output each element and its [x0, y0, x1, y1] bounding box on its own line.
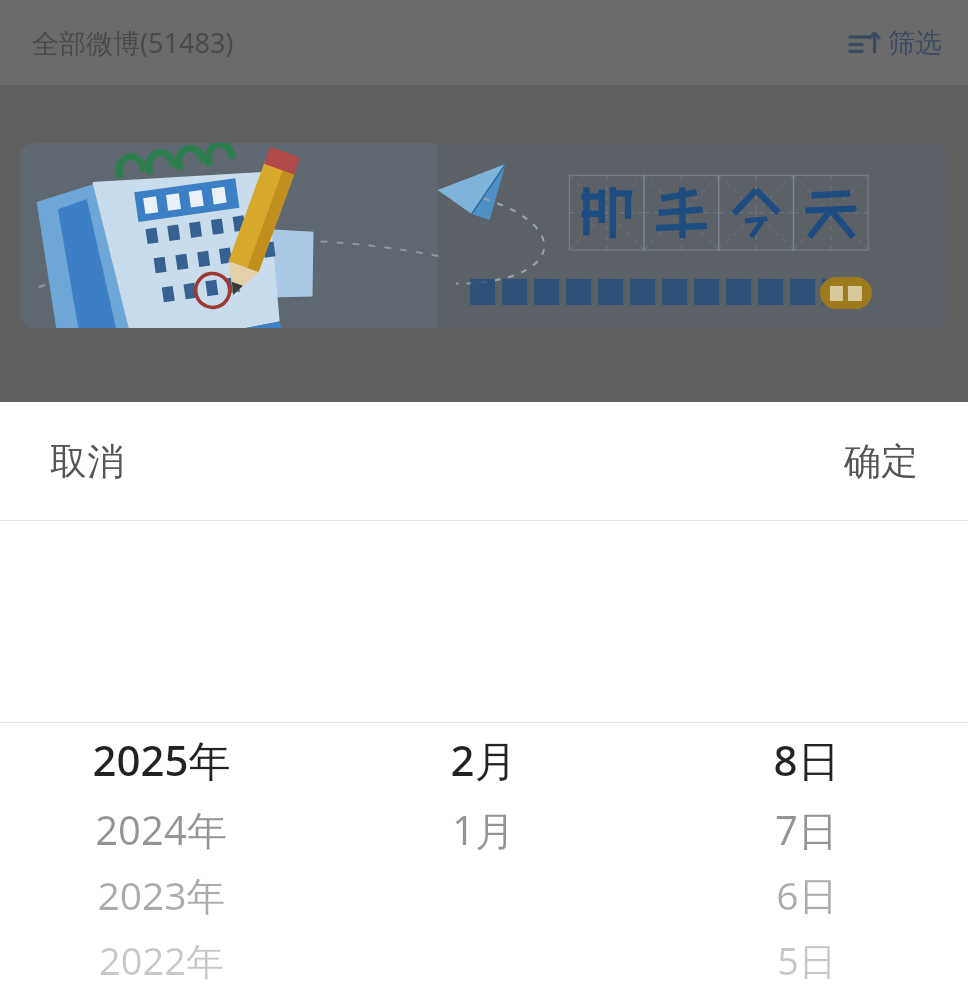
button[interactable]: 2024年 — [0, 797, 322, 862]
button[interactable] — [20, 143, 948, 328]
button[interactable]: 2022年 — [0, 927, 322, 992]
button[interactable]: 2月 — [322, 722, 645, 797]
button[interactable]: 8日 — [645, 722, 968, 797]
staticText: 6日 — [776, 868, 838, 921]
button[interactable]: 1月 — [322, 797, 645, 862]
staticText: 2025年 — [92, 731, 231, 788]
staticText: 确定 — [844, 438, 918, 485]
staticText: 5日 — [777, 934, 837, 986]
staticText: 2022年 — [99, 934, 224, 986]
staticText: 1月 — [452, 802, 515, 857]
other: 筛选 — [848, 28, 882, 58]
staticText: 2024年 — [95, 802, 227, 857]
staticText: 2023年 — [97, 868, 226, 921]
button[interactable]: 2025年 — [0, 722, 322, 797]
staticText: 7日 — [775, 802, 838, 857]
button[interactable]: 取消 — [30, 422, 144, 501]
staticText: 取消 — [50, 438, 124, 485]
button[interactable]: 7日 — [645, 797, 968, 862]
button[interactable]: 确定 — [824, 422, 938, 501]
button[interactable]: 筛选 — [844, 20, 946, 66]
staticText: 筛选 — [888, 26, 942, 60]
button[interactable]: 6日 — [645, 862, 968, 927]
button[interactable]: 5日 — [645, 927, 968, 992]
staticText: 全部微博(51483) — [32, 24, 234, 61]
staticText: 2月 — [450, 731, 517, 788]
staticText: 8日 — [773, 731, 840, 788]
button[interactable]: 2023年 — [0, 862, 322, 927]
